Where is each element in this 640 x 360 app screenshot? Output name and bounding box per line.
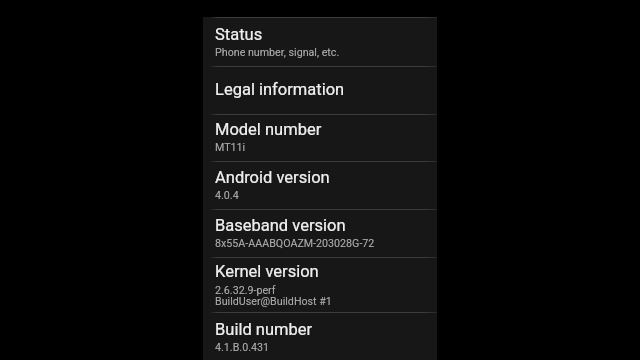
staticText: MT11i (215, 141, 246, 154)
button[interactable]: Build number (203, 312, 437, 360)
staticText: Model number (215, 120, 322, 139)
staticText: 4.1.B.0.431 (215, 341, 269, 354)
staticText: Baseband version (215, 216, 346, 235)
button[interactable]: Status (203, 17, 437, 66)
staticText: Legal information (215, 80, 345, 99)
staticText: Status (215, 25, 263, 44)
staticText: 8x55A-AAABQOAZM-203028G-72 (215, 237, 375, 250)
staticText: 4.0.4 (215, 189, 239, 202)
staticText: Build number (215, 320, 313, 339)
staticText: Phone number, signal, etc. (215, 46, 340, 59)
staticText: BuildUser@BuildHost #1 (215, 295, 332, 308)
button[interactable]: Baseband version (203, 209, 437, 257)
button[interactable]: Android version (203, 161, 437, 209)
button[interactable]: Kernel version (203, 257, 437, 312)
staticText: Android version (215, 168, 330, 187)
staticText: 2.6.32.9-perf (215, 284, 276, 297)
staticText: Kernel version (215, 262, 319, 281)
button[interactable]: Model number (203, 114, 437, 161)
button[interactable]: Legal information (203, 66, 437, 114)
